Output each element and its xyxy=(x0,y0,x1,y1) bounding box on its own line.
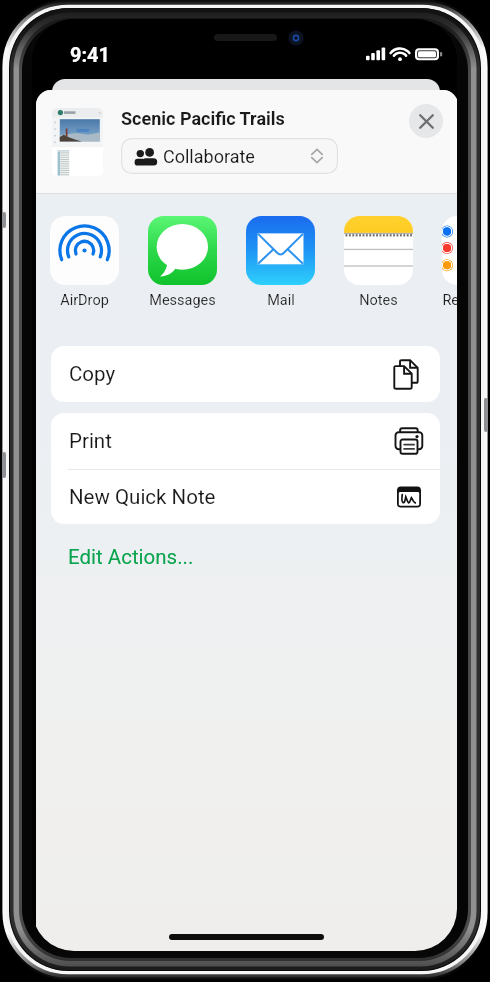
staticText: Messages xyxy=(149,292,216,309)
staticText: Edit Actions... xyxy=(68,545,194,569)
button[interactable]: AirDrop xyxy=(50,216,119,310)
button[interactable]: Messages xyxy=(148,216,217,310)
button[interactable]: Edit Actions... xyxy=(51,539,440,575)
button[interactable]: Mail xyxy=(246,216,315,310)
staticText: Copy xyxy=(69,362,116,386)
staticText: 9:41 xyxy=(70,43,111,66)
button[interactable]: Copy xyxy=(51,346,440,402)
staticText: New Quick Note xyxy=(69,485,216,509)
button[interactable]: Close xyxy=(409,104,443,138)
staticText: AirDrop xyxy=(60,292,109,309)
button[interactable]: Collaborate xyxy=(121,138,338,174)
staticText: Notes xyxy=(359,292,398,309)
staticText: Scenic Pacific Trails xyxy=(121,108,285,129)
button[interactable]: New Quick Note xyxy=(51,470,440,524)
button[interactable]: Reminders xyxy=(442,216,457,310)
staticText: Reminders xyxy=(442,292,457,309)
staticText: Mail xyxy=(267,292,295,309)
button[interactable]: Notes xyxy=(344,216,413,310)
staticText: Collaborate xyxy=(163,146,255,167)
staticText: Print xyxy=(69,429,112,453)
button[interactable]: Print xyxy=(51,413,440,469)
